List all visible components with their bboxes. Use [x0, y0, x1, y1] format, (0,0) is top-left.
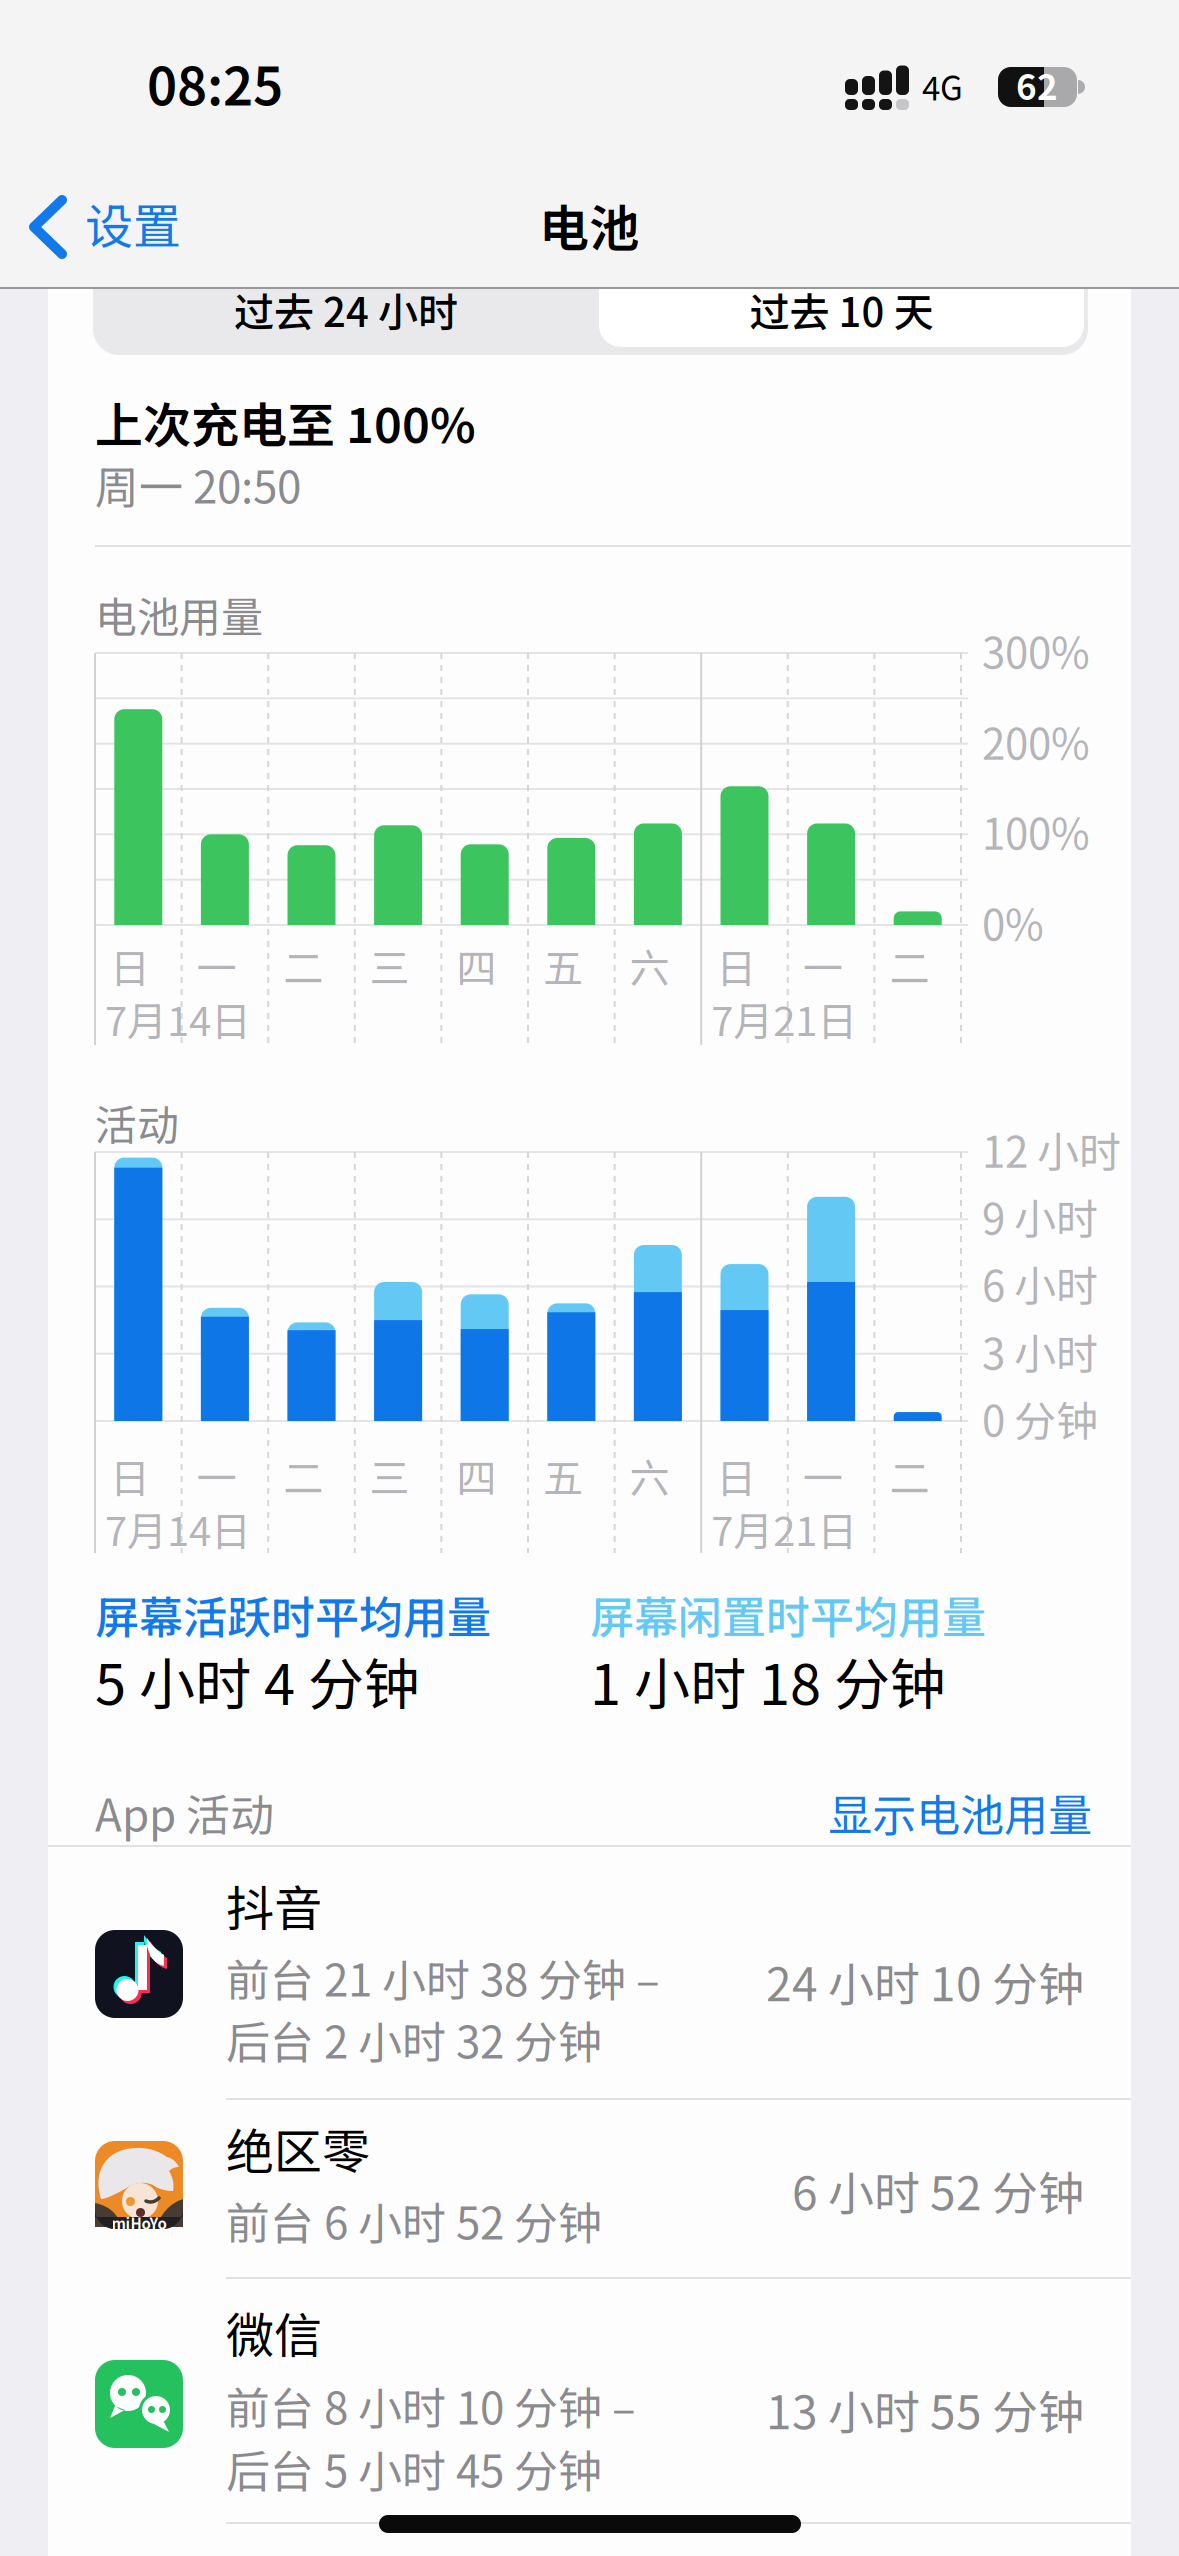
staticText: 五 — [543, 1447, 583, 1504]
staticText: 日 — [716, 937, 756, 994]
staticText: 电池用量 — [95, 584, 263, 645]
staticText: 日 — [110, 1447, 150, 1504]
staticText: 一 — [197, 937, 237, 994]
staticText: 活动 — [95, 1092, 179, 1153]
staticText: 日 — [716, 1447, 756, 1504]
staticText: 上次充电至 100% — [95, 387, 476, 457]
staticText: 前台 21 小时 38 分钟 – — [226, 1945, 660, 2009]
button[interactable]: 抖音 — [48, 1858, 1131, 2099]
staticText: App 活动 — [95, 1780, 274, 1844]
staticText: 二 — [889, 1447, 929, 1504]
staticText: 08:25 — [147, 45, 283, 120]
staticText: 3 小时 — [982, 1321, 1098, 1382]
staticText: 0% — [982, 892, 1044, 953]
staticText: 6 小时 — [982, 1253, 1098, 1314]
staticText: 1 小时 18 分钟 — [590, 1640, 946, 1721]
staticText: 300% — [982, 620, 1090, 681]
staticText: 62 — [1016, 59, 1058, 110]
staticText: 抖音 — [226, 1870, 322, 1940]
staticText: 13 小时 55 分钟 — [766, 2376, 1084, 2442]
staticText: 六 — [630, 937, 670, 994]
staticText: 100% — [982, 801, 1090, 862]
staticText: 四 — [456, 1447, 496, 1504]
staticText: 200% — [982, 711, 1090, 772]
staticText: 前台 8 小时 10 分钟 – — [226, 2373, 636, 2437]
staticText: 6 小时 52 分钟 — [792, 2157, 1084, 2223]
staticText: 四 — [456, 937, 496, 994]
staticText: 二 — [283, 1447, 323, 1504]
staticText: 过去 10 天 — [749, 281, 933, 338]
button[interactable]: 微信 — [48, 2279, 1131, 2523]
staticText: 显示电池用量 — [828, 1780, 1092, 1844]
staticText: 设置 — [85, 188, 181, 258]
staticText: 5 小时 4 分钟 — [95, 1640, 420, 1721]
staticText: 7月14日 — [105, 990, 251, 1047]
staticText: 绝区零 — [226, 2113, 370, 2183]
staticText: 一 — [197, 1447, 237, 1504]
staticText: 24 小时 10 分钟 — [766, 1948, 1084, 2014]
staticText: 7月21日 — [711, 990, 857, 1047]
staticText: 7月14日 — [105, 1500, 251, 1557]
staticText: 4G — [922, 62, 963, 110]
staticText: 9 小时 — [982, 1186, 1098, 1247]
button[interactable]: 显示电池用量 — [640, 1780, 1100, 1868]
button[interactable]: 设置 — [20, 188, 1179, 2556]
staticText: 屏幕活跃时平均用量 — [95, 1582, 491, 1646]
staticText: 微信 — [226, 2297, 322, 2367]
staticText: 前台 6 小时 52 分钟 — [226, 2188, 602, 2252]
staticText: 五 — [543, 937, 583, 994]
staticText: 12 小时 — [982, 1119, 1121, 1180]
staticText: 过去 24 小时 — [234, 281, 458, 338]
staticText: 三 — [370, 937, 410, 994]
button[interactable]: 过去 10 天 — [599, 263, 1084, 347]
staticText: 二 — [889, 937, 929, 994]
button[interactable]: miHoYo — [48, 2100, 1131, 2278]
staticText: 屏幕闲置时平均用量 — [590, 1582, 986, 1646]
staticText: 三 — [370, 1447, 410, 1504]
staticText: 0 分钟 — [982, 1388, 1098, 1449]
staticText: 日 — [110, 937, 150, 994]
staticText: 一 — [803, 937, 843, 994]
staticText: 后台 5 小时 45 分钟 — [226, 2436, 602, 2500]
staticText: miHoYo — [111, 2212, 166, 2234]
staticText: 周一 20:50 — [95, 452, 301, 516]
staticText: 7月21日 — [711, 1500, 857, 1557]
staticText: 电池 — [539, 189, 639, 261]
button[interactable]: 过去 24 小时 — [93, 259, 599, 355]
staticText: 一 — [803, 1447, 843, 1504]
staticText: 后台 2 小时 32 分钟 — [226, 2007, 602, 2071]
staticText: 六 — [630, 1447, 670, 1504]
staticText: 二 — [283, 937, 323, 994]
